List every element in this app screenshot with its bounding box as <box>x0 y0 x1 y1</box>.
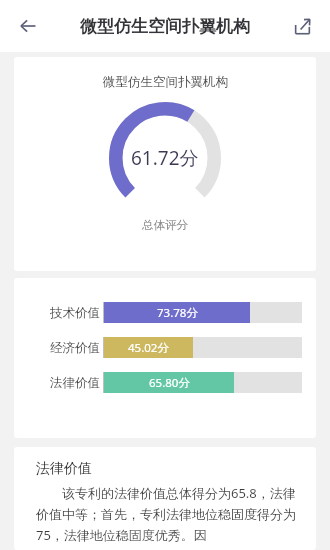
staticText: 45.02分 <box>128 340 169 356</box>
staticText: 61.72分 <box>131 145 199 171</box>
staticText: 法律价值 <box>36 460 92 478</box>
staticText: 微型仿生空间扑翼机构 <box>80 16 250 37</box>
staticText: 73.78分 <box>157 305 198 321</box>
staticText: 法律价值 <box>50 375 100 391</box>
staticText: 微型仿生空间扑翼机构 <box>103 74 228 90</box>
staticText: 技术价值 <box>50 305 100 321</box>
staticText: 该专利的法律价值总体得分为65.8，法律价值中等；首先，专利法律地位稳固度得分为… <box>36 484 300 544</box>
staticText: 总体评分 <box>142 218 188 232</box>
staticText: 经济价值 <box>50 340 100 356</box>
button[interactable]: Share <box>282 6 322 46</box>
staticText: 65.80分 <box>149 375 190 391</box>
button[interactable]: Back <box>8 6 48 46</box>
